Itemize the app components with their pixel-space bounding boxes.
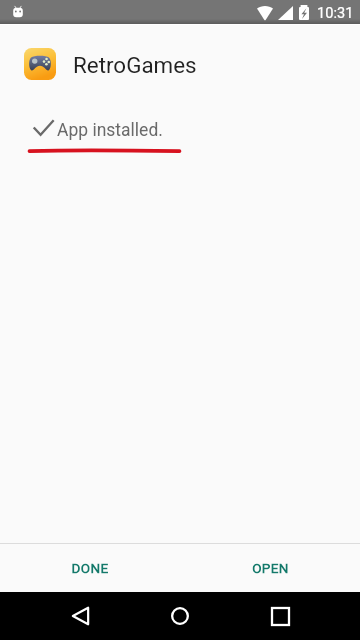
staticText: RetroGames — [73, 52, 197, 78]
staticText: 10:31 — [317, 4, 354, 21]
staticText: App installed. — [57, 120, 163, 141]
staticText: DONE — [71, 560, 109, 576]
button[interactable]: DONE — [0, 544, 180, 592]
staticText: OPEN — [252, 560, 289, 576]
button[interactable]: Recent apps — [250, 592, 310, 640]
button[interactable]: OPEN — [180, 544, 360, 592]
button[interactable]: Back — [50, 592, 110, 640]
button[interactable]: Home — [150, 592, 210, 640]
